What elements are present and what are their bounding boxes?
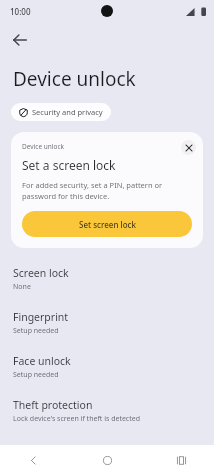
button[interactable]: Home <box>94 447 120 473</box>
staticText: Fingerprint <box>13 310 69 324</box>
button[interactable]: Back <box>6 26 34 54</box>
staticText: Set a screen lock <box>22 157 116 173</box>
button[interactable]: Set screen lock <box>22 211 192 237</box>
staticText: Security and privacy <box>32 107 103 117</box>
staticText: For added security, set a PIN, pattern o… <box>22 180 192 201</box>
button[interactable]: Dismiss <box>181 140 196 155</box>
staticText: Lock device's screen if theft is detecte… <box>13 414 141 424</box>
button[interactable]: Face unlock <box>0 354 214 380</box>
staticText: Device unlock <box>13 66 136 92</box>
staticText: Setup needed <box>13 326 59 336</box>
button[interactable]: Recent apps <box>168 447 194 473</box>
button[interactable]: Back <box>20 447 46 473</box>
button[interactable]: Screen lock <box>0 266 214 292</box>
staticText: Set screen lock <box>79 219 136 230</box>
button[interactable]: Fingerprint <box>0 310 214 336</box>
staticText: Device unlock <box>22 142 64 151</box>
button[interactable]: Theft protection <box>0 398 214 424</box>
staticText: Setup needed <box>13 370 59 380</box>
staticText: Theft protection <box>13 398 93 412</box>
button[interactable]: Security and privacy <box>11 103 111 121</box>
staticText: 10:00 <box>10 6 31 17</box>
staticText: Face unlock <box>13 354 71 368</box>
staticText: None <box>13 282 31 292</box>
staticText: Screen lock <box>13 266 69 280</box>
